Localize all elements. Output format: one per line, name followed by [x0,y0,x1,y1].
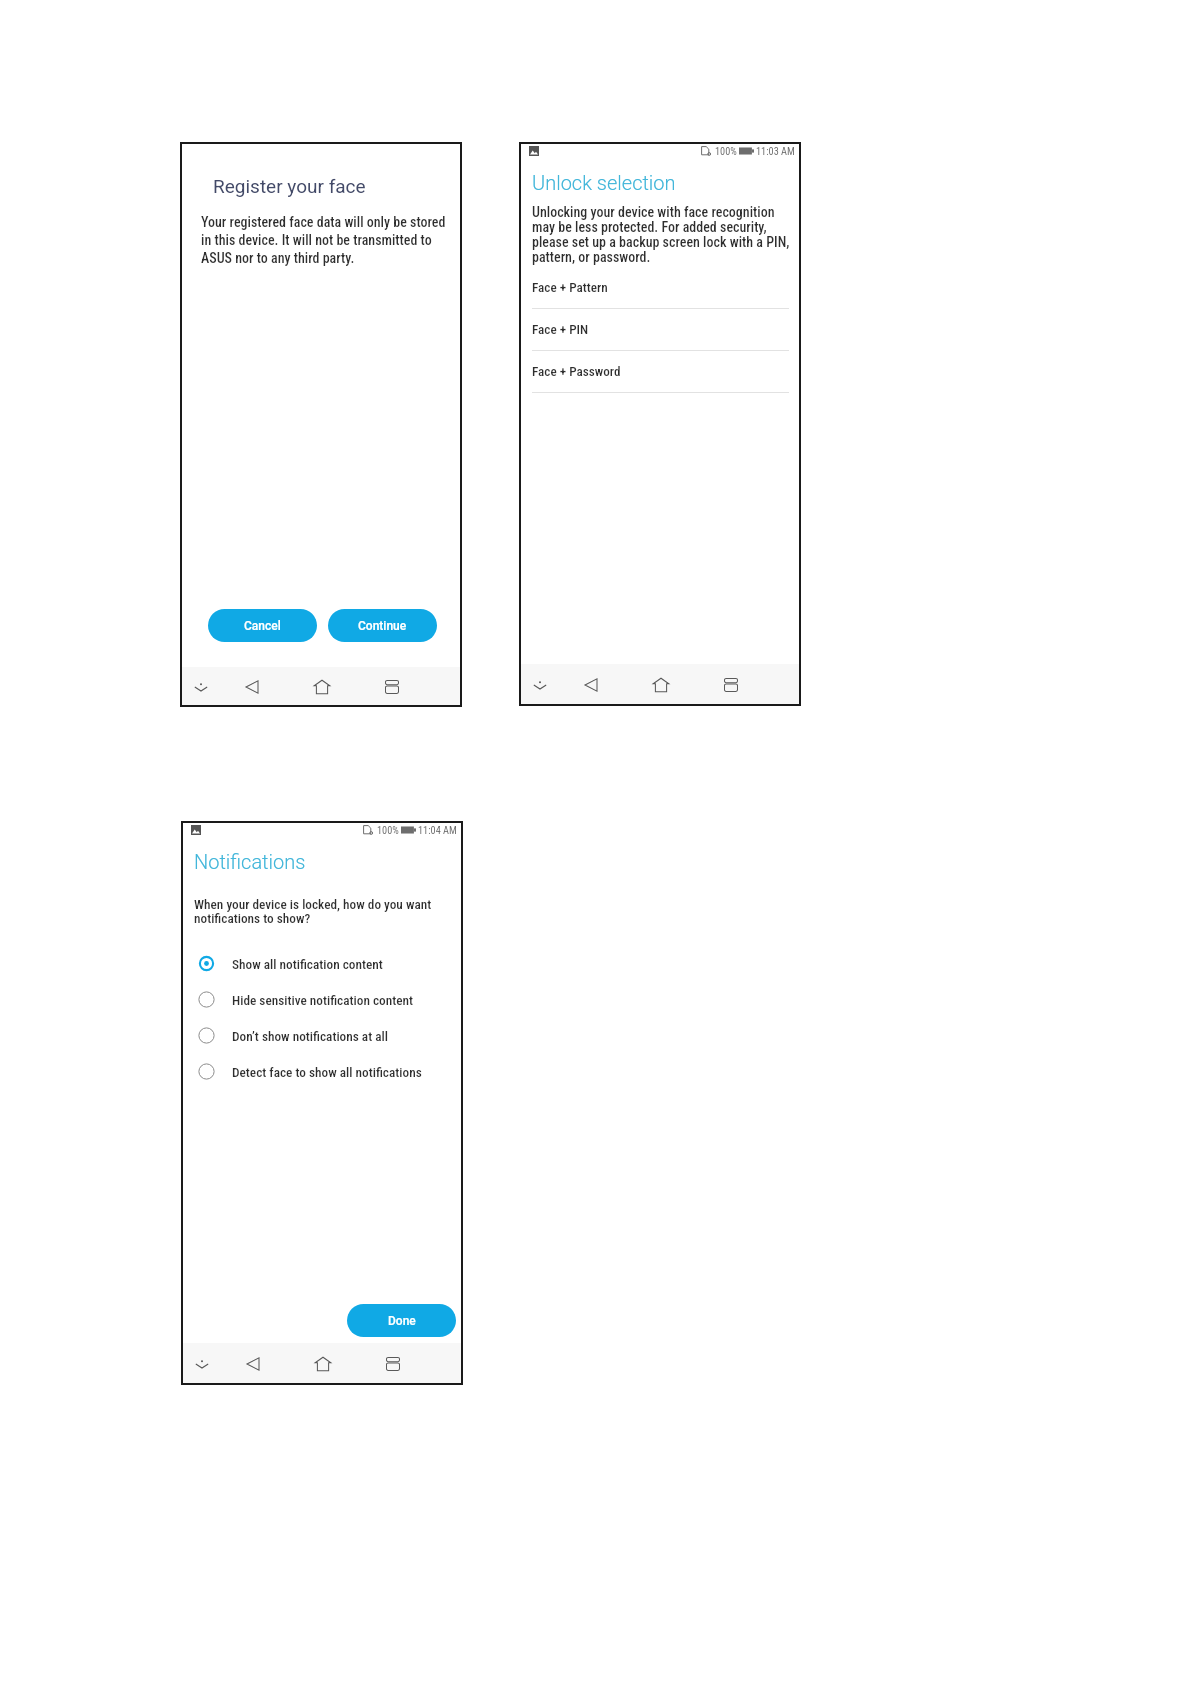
button[interactable]: Home [647,671,675,699]
button[interactable]: Back [238,673,266,701]
button[interactable]: Home [309,1350,337,1378]
staticText: 100% [715,145,737,157]
staticText: Your registered face data will only be s… [201,214,446,267]
button[interactable]: Cancel [208,609,317,642]
button[interactable]: Hide navigation bar [188,1350,216,1378]
staticText: Unlocking your device with face recognit… [532,204,790,265]
staticText: Notifications [194,850,306,873]
button[interactable]: Recent apps [379,1350,407,1378]
staticText: When your device is locked, how do you w… [194,897,432,926]
button[interactable]: Hide navigation bar [187,673,215,701]
button[interactable]: Back [239,1350,267,1378]
staticText: Done [388,1314,416,1328]
staticText: Face + Password [532,364,621,379]
staticText: 100% [377,824,399,836]
staticText: Face + Pattern [532,280,608,295]
button[interactable]: Home [308,673,336,701]
button[interactable]: Detect face to show all notifications [181,1053,463,1089]
staticText: 11:04 AM [418,824,457,836]
staticText: Cancel [244,619,281,633]
button[interactable]: Face + Password [519,351,801,393]
staticText: 11:03 AM [756,145,795,157]
button[interactable]: Recent apps [717,671,745,699]
button[interactable]: Show all notification content [181,945,463,981]
staticText: Face + PIN [532,322,589,337]
staticText: Unlock selection [532,171,676,194]
button[interactable]: Face + Pattern [519,267,801,309]
staticText: Continue [358,619,407,633]
button[interactable]: Continue [328,609,437,642]
staticText: Don’t show notifications at all [232,1029,389,1045]
staticText: Show all notification content [232,957,383,973]
staticText: Hide sensitive notification content [232,993,414,1009]
button[interactable]: Back [577,671,605,699]
button[interactable]: Recent apps [378,673,406,701]
button[interactable]: Done [347,1304,456,1337]
staticText: Register your face [213,175,366,197]
staticText: Detect face to show all notifications [232,1065,422,1081]
button[interactable]: Don’t show notifications at all [181,1017,463,1053]
button[interactable]: Hide navigation bar [526,671,554,699]
button[interactable]: Hide sensitive notification content [181,981,463,1017]
button[interactable]: Face + PIN [519,309,801,351]
